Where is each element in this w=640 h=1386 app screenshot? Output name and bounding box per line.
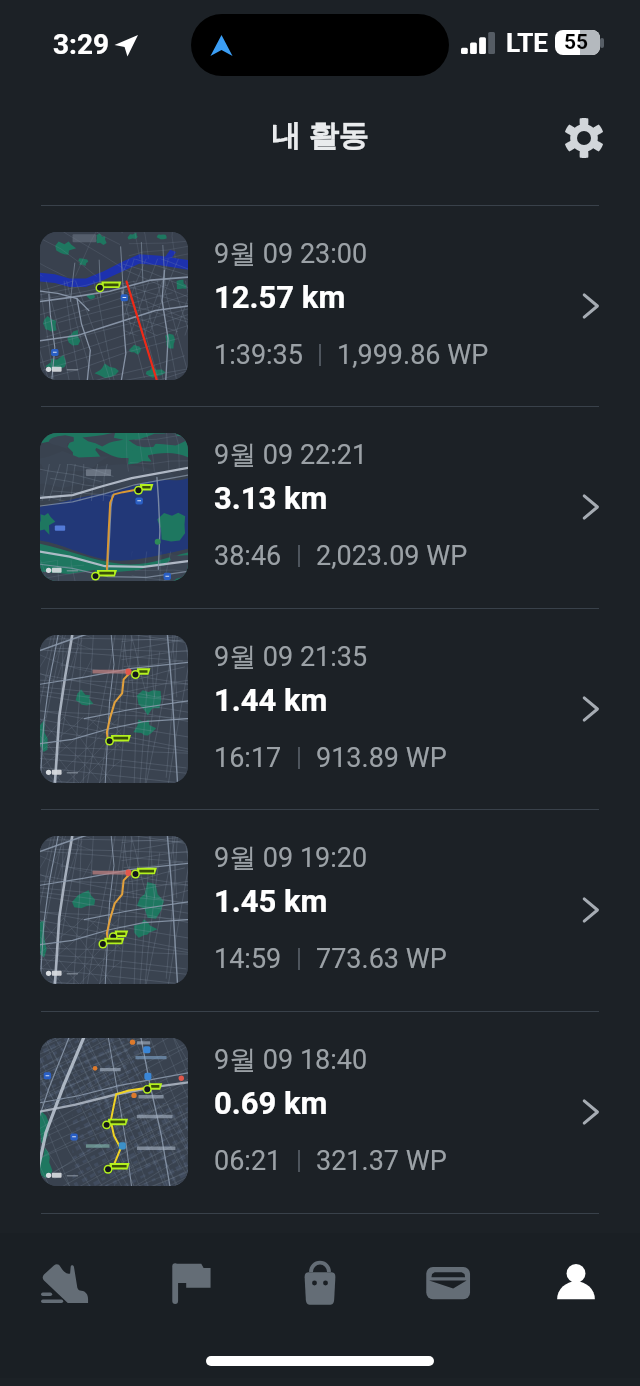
staticText: 1.45 km [214,883,328,919]
staticText: 2,023.09 WP [316,540,468,572]
button[interactable]: Shop [256,1233,384,1329]
staticText: 9월 09 18:40 [214,1043,368,1077]
staticText: 06:21 [214,1145,282,1177]
button[interactable]: Profile [512,1233,640,1329]
button[interactable]: Activities [0,1233,128,1329]
button[interactable]: 9월 09 23:00 [0,206,640,406]
button[interactable]: 9월 09 22:21 [0,407,640,607]
staticText: 38:46 [214,540,282,572]
staticText: 12.57 km [214,279,346,315]
button[interactable]: Settings [553,107,615,169]
button[interactable]: 9월 09 19:20 [0,810,640,1010]
staticText: 9월 09 19:20 [214,841,368,875]
staticText: 3:29 [53,28,110,61]
staticText: 3.13 km [214,480,328,516]
button[interactable]: Wallet [384,1233,512,1329]
button[interactable]: 9월 09 18:40 [0,1012,640,1212]
staticText: 내 활동 [271,117,369,155]
staticText: 1.44 km [214,682,328,718]
staticText: 1,999.86 WP [337,339,489,371]
staticText: 9월 09 23:00 [214,237,368,271]
staticText: 913.89 WP [316,742,447,774]
staticText: 9월 09 21:35 [214,640,368,674]
staticText: 321.37 WP [316,1145,447,1177]
button[interactable]: Challenges [128,1233,256,1329]
staticText: 1:39:35 [214,339,303,371]
staticText: 0.69 km [214,1085,328,1121]
staticText: 9월 09 22:21 [214,438,368,472]
staticText: 16:17 [214,742,282,774]
staticText: 773.63 WP [316,943,447,975]
button[interactable]: 9월 09 21:35 [0,609,640,809]
staticText: LTE [506,28,548,58]
staticText: 14:59 [214,943,282,975]
staticText: 55 [564,30,589,55]
